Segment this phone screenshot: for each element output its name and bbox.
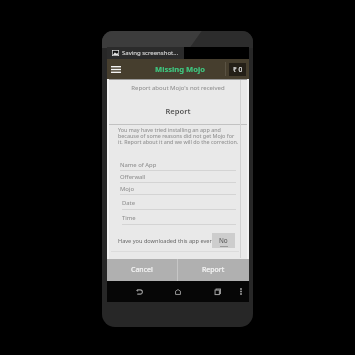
staticText: Time: [122, 214, 136, 222]
staticText: Report about Mojo's not received: [107, 84, 249, 92]
button[interactable]: Home: [172, 281, 184, 302]
button[interactable]: No: [212, 233, 235, 248]
staticText: Name of App: [120, 161, 157, 169]
staticText: ₹ 0: [233, 65, 243, 74]
button[interactable]: More options: [235, 281, 247, 302]
button[interactable]: Cancel: [107, 259, 177, 281]
staticText: Missing Mojo: [155, 64, 205, 74]
staticText: Report: [107, 106, 249, 116]
staticText: Saving screenshot...: [122, 49, 179, 57]
staticText: Offerwall: [120, 173, 146, 181]
button[interactable]: Recent apps: [211, 281, 223, 302]
button[interactable]: ₹ 0: [229, 63, 246, 76]
staticText: You may have tried installing an app and…: [118, 126, 239, 145]
staticText: Cancel: [131, 265, 153, 275]
staticText: Mojo: [120, 185, 134, 193]
button[interactable]: Report: [178, 259, 249, 281]
button[interactable]: Back: [133, 281, 145, 302]
staticText: Date: [122, 199, 136, 207]
staticText: Report: [202, 265, 225, 275]
staticText: No: [219, 236, 228, 245]
staticText: Have you downloaded this app ever: [118, 237, 212, 245]
button[interactable]: Open navigation menu: [108, 60, 124, 78]
